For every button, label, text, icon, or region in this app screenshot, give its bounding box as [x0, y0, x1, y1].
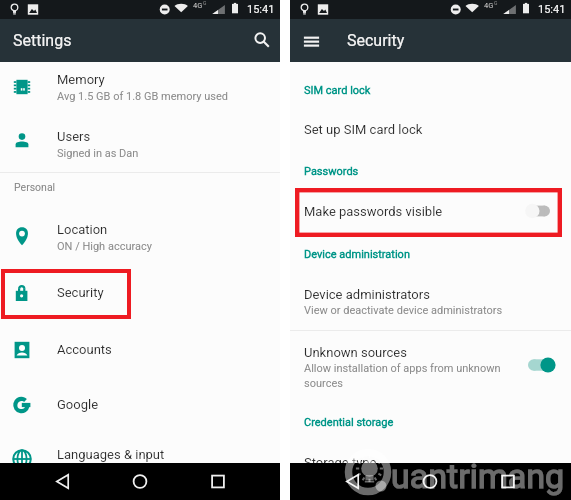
staticText: Storage type [304, 455, 377, 470]
staticText: View or deactivate device administrators [304, 304, 503, 317]
staticText: uantrimang [391, 456, 565, 496]
staticText: Unknown sources [304, 345, 407, 360]
staticText: Device administrators [304, 287, 430, 302]
button[interactable]: Home [124, 463, 156, 500]
staticText: ON / High accuracy [57, 240, 152, 253]
staticText: G [494, 0, 498, 6]
staticText: Users [57, 129, 91, 144]
button[interactable]: Memory [0, 61, 280, 113]
staticText: Personal [14, 181, 56, 193]
button[interactable]: Recent apps [202, 463, 234, 500]
button[interactable]: Unknown sources [522, 353, 560, 377]
staticText: Set up SIM card lock [304, 122, 423, 137]
button[interactable]: Security [0, 267, 280, 319]
staticText: 4G [484, 1, 494, 10]
button[interactable]: Set up SIM card lock [290, 119, 571, 149]
staticText: Credential storage [304, 416, 394, 429]
button[interactable]: Make passwords visible [522, 199, 560, 223]
button[interactable]: Back [47, 463, 79, 500]
staticText: 15:41 [247, 3, 275, 16]
staticText: Device administration [304, 248, 410, 261]
button[interactable]: Make passwords visible [290, 203, 571, 231]
staticText: 4G [193, 1, 203, 10]
button[interactable]: Accounts [0, 324, 280, 376]
staticText: 15:41 [538, 3, 566, 16]
staticText: Settings [13, 31, 72, 50]
staticText: Avg 1.5 GB of 1.8 GB memory used [57, 90, 228, 103]
button[interactable]: Device administrators [290, 286, 571, 320]
staticText: Passwords [304, 165, 359, 178]
staticText: Security [57, 285, 104, 300]
staticText: G [203, 0, 207, 6]
button[interactable]: Google [0, 379, 280, 431]
button[interactable]: Home [414, 463, 446, 500]
staticText: SIM card lock [304, 84, 371, 97]
button[interactable]: Storage type [290, 452, 571, 482]
button[interactable]: Open navigation menu [295, 26, 324, 55]
staticText: Accounts [57, 342, 112, 357]
staticText: Signed in as Dan [57, 147, 139, 160]
button[interactable]: Back [337, 463, 369, 500]
staticText: Security [347, 31, 405, 50]
staticText: Google [57, 397, 99, 412]
staticText: Location [57, 222, 108, 237]
button[interactable]: Languages & input [0, 433, 280, 485]
button[interactable]: Search [246, 26, 275, 55]
staticText: Memory [57, 72, 105, 87]
button[interactable]: Unknown sources [290, 344, 571, 392]
button[interactable]: Location [0, 210, 280, 262]
staticText: Languages & input [57, 447, 165, 462]
staticText: Allow installation of apps from unknown … [304, 362, 501, 390]
button[interactable]: Recent apps [492, 463, 524, 500]
button[interactable]: Users [0, 114, 280, 166]
staticText: Make passwords visible [304, 204, 443, 219]
